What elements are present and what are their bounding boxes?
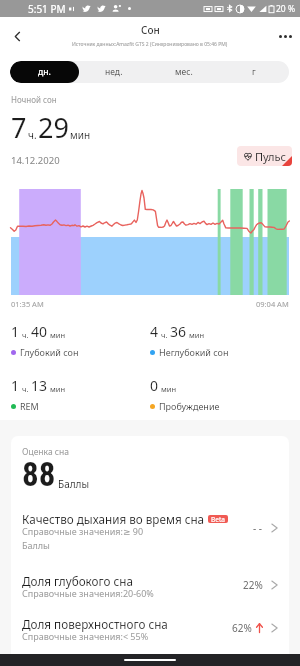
staticText: г [252, 66, 256, 78]
staticText: 4 [150, 322, 159, 341]
staticText: 1 [11, 322, 20, 341]
staticText: 09:04 AM [256, 299, 289, 309]
staticText: 62% [232, 621, 252, 635]
staticText: Качество дыхания во время сна [22, 511, 205, 527]
button[interactable]: дн. [10, 61, 79, 83]
button[interactable]: Пульс [237, 146, 292, 166]
staticText: Неглубокий сон [159, 346, 229, 358]
staticText: 29 [38, 109, 69, 146]
staticText: - - [253, 521, 263, 535]
button[interactable]: Доля поверхностного сна [11, 615, 289, 641]
staticText: мин [161, 384, 177, 394]
staticText: мес. [175, 66, 193, 78]
staticText: Справочные значения:≥ 90 Баллы [22, 525, 144, 551]
staticText: 88 [22, 455, 56, 494]
staticText: Оценка сна [22, 446, 69, 458]
staticText: Пробуждение [159, 400, 220, 412]
staticText: Справочные значения:20-60% [22, 587, 154, 599]
staticText: Ночной сон [11, 94, 57, 105]
staticText: 14.12.2020 [11, 154, 60, 167]
staticText: мин [50, 384, 66, 394]
staticText: 7 [11, 109, 27, 146]
staticText: Доля глубокого сна [22, 573, 133, 589]
staticText: мин [189, 330, 205, 340]
staticText: 0 [150, 376, 159, 395]
staticText: 5:51 PM [28, 2, 66, 16]
staticText: Глубокий сон [20, 346, 79, 358]
staticText: нед. [105, 66, 123, 78]
staticText: Справочные значения:< 55% [22, 630, 149, 642]
staticText: 36 [170, 322, 187, 341]
staticText: 20 % [276, 3, 295, 15]
staticText: ч. [28, 128, 37, 142]
staticText: ч. [22, 330, 29, 340]
staticText: ч. [161, 330, 168, 340]
button[interactable]: мес. [149, 61, 219, 83]
button[interactable]: More options [272, 23, 298, 49]
staticText: Сон [141, 23, 160, 37]
button[interactable]: г [219, 61, 289, 83]
staticText: мин [50, 330, 66, 340]
staticText: дн. [38, 66, 51, 78]
button[interactable]: нед. [79, 61, 149, 83]
staticText: 01:35 AM [11, 299, 44, 309]
button[interactable]: Back [4, 23, 30, 49]
staticText: Пульс [255, 149, 286, 164]
staticText: 13 [31, 376, 48, 395]
staticText: Баллы [58, 477, 90, 491]
staticText: ч. [22, 384, 29, 394]
staticText: Beta [211, 515, 225, 523]
staticText: 22% [243, 578, 263, 592]
button[interactable]: Качество дыхания во время сна [11, 510, 289, 546]
staticText: мин [70, 128, 91, 142]
button[interactable]: Доля глубокого сна [11, 572, 289, 598]
staticText: Источник данных:Amazfit GTS 2 (Синхрониз… [72, 41, 228, 48]
staticText: REM [20, 400, 39, 412]
staticText: 40 [31, 322, 48, 341]
staticText: Доля поверхностного сна [22, 616, 168, 632]
staticText: 1 [11, 376, 20, 395]
